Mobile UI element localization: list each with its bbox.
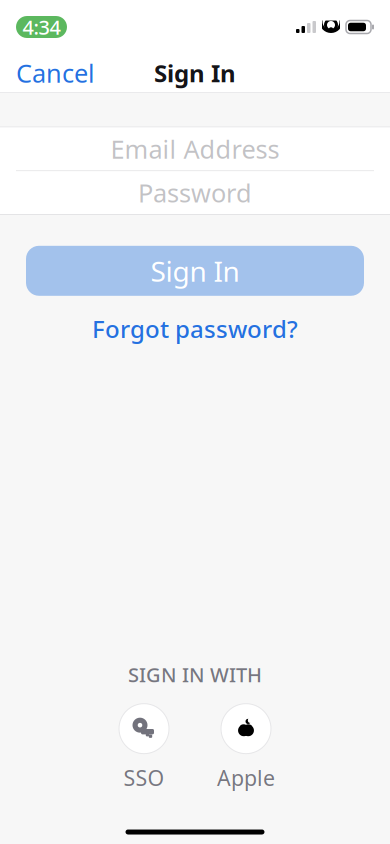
- button[interactable]: Email Address: [0, 127, 390, 170]
- staticText: Sign In: [154, 57, 236, 89]
- staticText: Password: [138, 176, 252, 209]
- staticText: SSO: [123, 764, 164, 792]
- button[interactable]: Password: [0, 171, 390, 214]
- staticText: Sign In: [150, 252, 239, 289]
- button[interactable]: SSO: [106, 704, 182, 792]
- staticText: 4:34: [22, 14, 60, 40]
- staticText: Apple: [217, 764, 275, 792]
- staticText: Forgot password?: [92, 313, 298, 345]
- button[interactable]: Cancel: [4, 48, 107, 98]
- staticText: Cancel: [16, 56, 95, 90]
- staticText: SIGN IN WITH: [128, 661, 262, 688]
- staticText: Email Address: [110, 132, 279, 166]
- button[interactable]: Forgot password?: [76, 305, 314, 353]
- button[interactable]: Apple: [208, 704, 284, 792]
- button[interactable]: Sign In: [26, 246, 364, 296]
